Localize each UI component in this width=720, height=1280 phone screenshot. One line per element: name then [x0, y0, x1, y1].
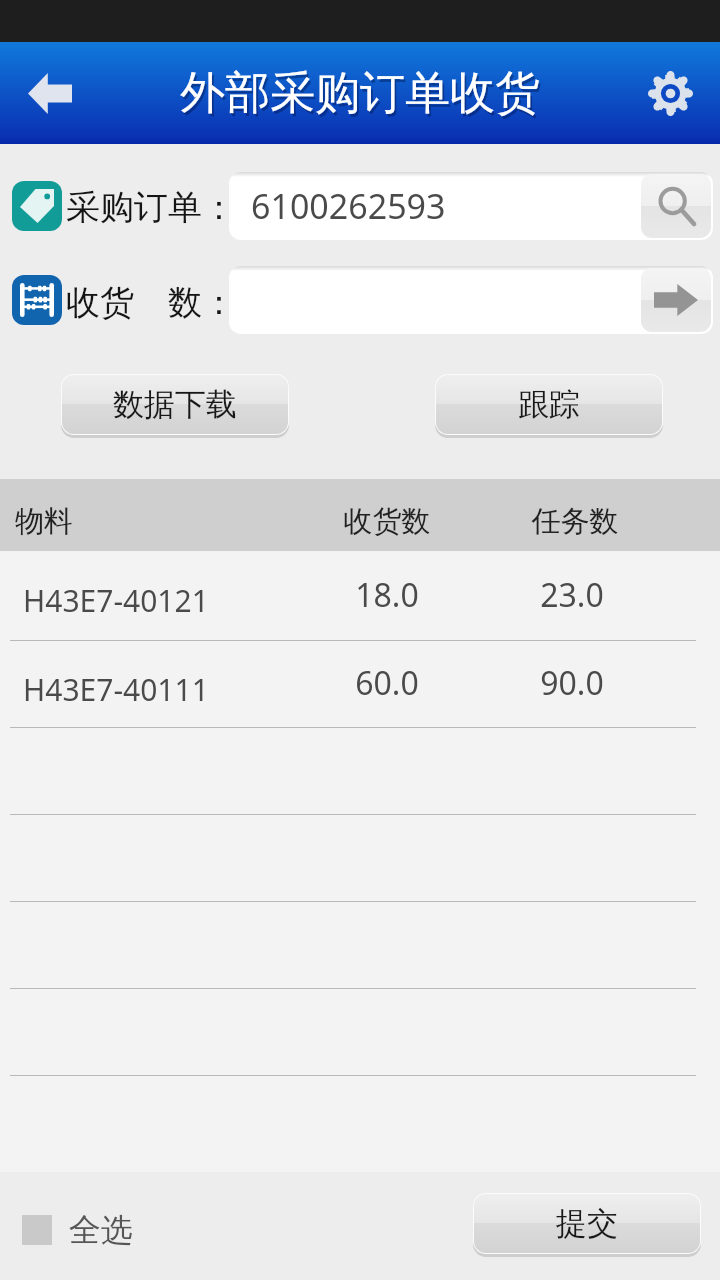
staticText: 外部采购订单收货 — [182, 68, 542, 125]
staticText: 18.0 — [302, 573, 472, 617]
staticText: H43E7-40111 — [23, 669, 209, 710]
button[interactable]: Search — [641, 174, 711, 238]
staticText: 物料 — [15, 503, 73, 540]
staticText: 23.0 — [487, 573, 657, 617]
staticText: 跟踪 — [518, 385, 580, 424]
staticText: 90.0 — [487, 661, 657, 705]
button[interactable]: 跟踪 — [435, 374, 663, 435]
staticText: 外部采购订单收货 — [180, 65, 540, 122]
staticText: 提交 — [556, 1204, 618, 1243]
button[interactable]: 6100262593 — [229, 172, 713, 240]
button[interactable]: H43E7-40111 — [0, 641, 720, 727]
button[interactable]: Back — [8, 53, 92, 133]
button[interactable]: 提交 — [473, 1193, 701, 1254]
staticText: 60.0 — [302, 661, 472, 705]
button[interactable]: Settings — [634, 57, 706, 129]
staticText: 收货数 — [302, 503, 472, 540]
button[interactable]: 数据下载 — [61, 374, 289, 435]
staticText: 收货 数： — [66, 278, 236, 324]
button[interactable]: Confirm — [229, 266, 713, 334]
staticText: 6100262593 — [251, 183, 446, 229]
staticText: 全选 — [69, 1210, 133, 1250]
button[interactable]: Confirm — [641, 268, 711, 332]
staticText: 采购订单： — [66, 186, 236, 229]
staticText: 数据下载 — [113, 385, 237, 424]
button[interactable]: H43E7-40121 — [0, 551, 720, 640]
staticText: 任务数 — [490, 503, 660, 540]
button[interactable]: 全选 — [0, 1210, 143, 1250]
staticText: H43E7-40121 — [23, 580, 209, 621]
